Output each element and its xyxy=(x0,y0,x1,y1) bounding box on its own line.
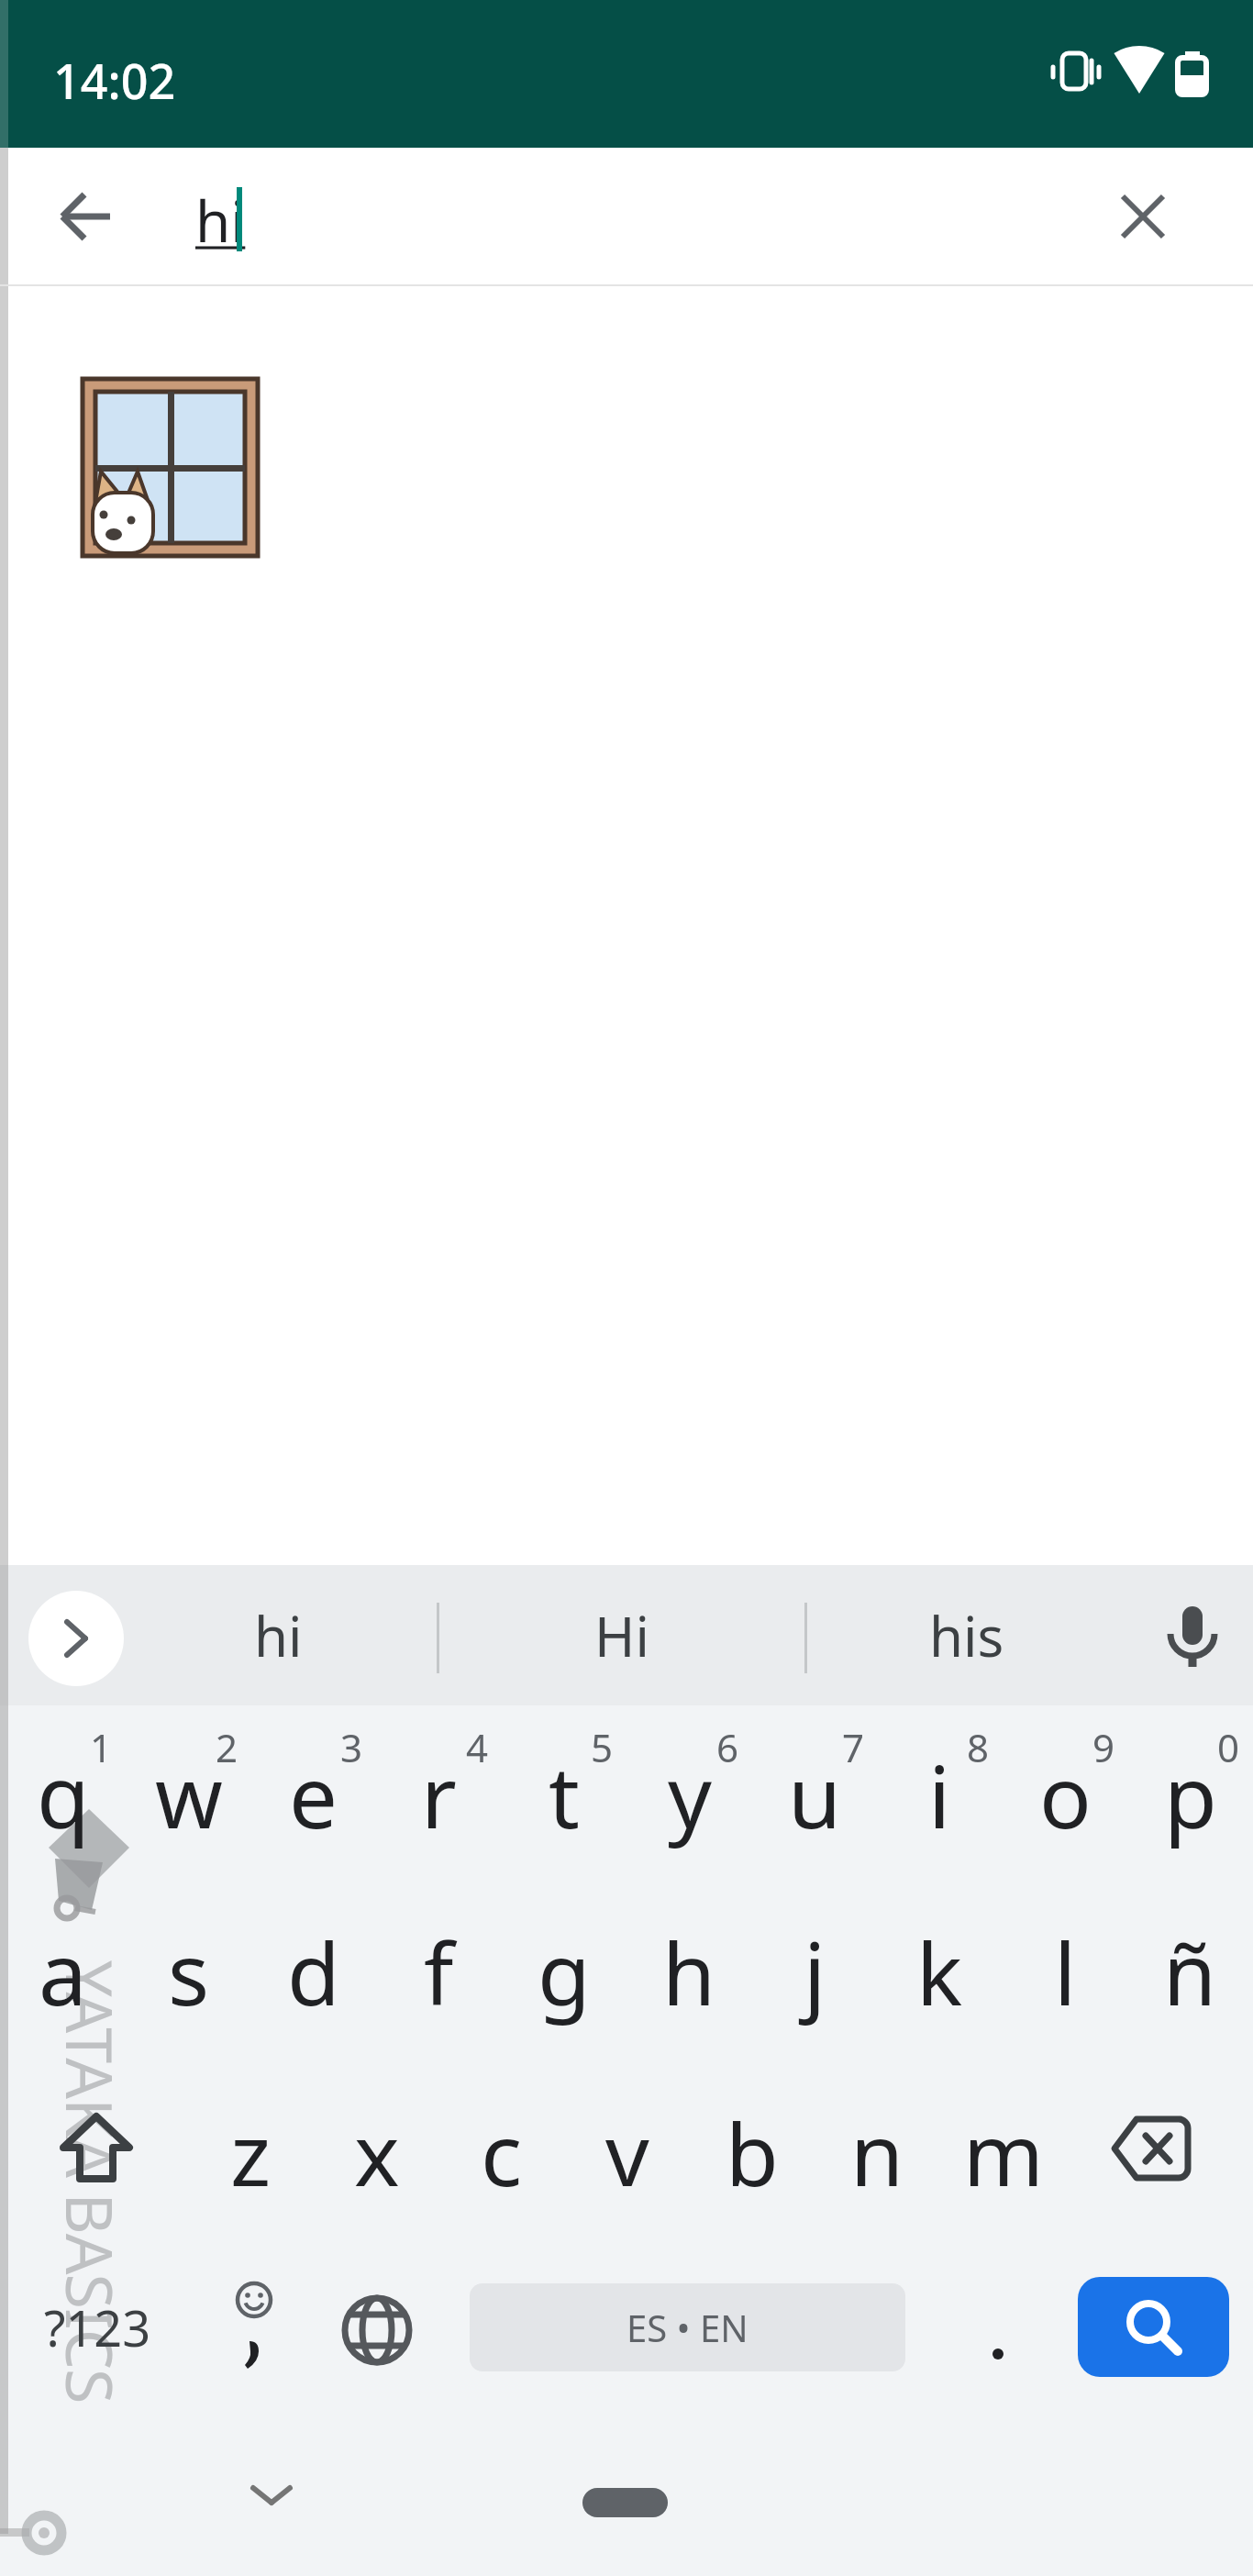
staticText: v xyxy=(605,2094,649,2212)
button[interactable]: x xyxy=(314,2064,439,2241)
staticText: 3 xyxy=(340,1721,363,1773)
staticText: m xyxy=(963,2094,1044,2212)
staticText: 14:02 xyxy=(53,48,176,113)
staticText: r xyxy=(421,1737,457,1854)
staticText: o xyxy=(1039,1737,1092,1854)
staticText: Hi xyxy=(594,1598,649,1673)
button[interactable]: e xyxy=(250,1706,376,1883)
staticText: e xyxy=(289,1737,338,1854)
button[interactable] xyxy=(1137,1583,1247,1693)
button[interactable] xyxy=(28,2082,165,2220)
staticText: YATAKA BASICS xyxy=(48,1960,135,2404)
button[interactable]: q xyxy=(0,1706,126,1883)
button[interactable]: s xyxy=(126,1883,251,2060)
staticText: i xyxy=(928,1737,951,1854)
button[interactable]: Hi xyxy=(505,1565,739,1705)
staticText: d xyxy=(287,1914,340,2031)
staticText: u xyxy=(788,1737,842,1854)
button[interactable]: o xyxy=(1003,1706,1128,1883)
staticText: w xyxy=(155,1737,223,1854)
staticText: 4 xyxy=(466,1721,489,1773)
staticText: y xyxy=(668,1737,712,1854)
button[interactable] xyxy=(1082,2087,1220,2225)
staticText: ?123 xyxy=(44,2293,151,2361)
button[interactable]: w xyxy=(126,1706,251,1883)
staticText: f xyxy=(424,1914,454,2031)
staticText: h xyxy=(662,1914,716,2031)
staticText: 2 xyxy=(216,1721,238,1773)
staticText: x xyxy=(354,2094,400,2212)
staticText: c xyxy=(481,2094,523,2212)
staticText: hi xyxy=(195,182,246,259)
button[interactable]: t xyxy=(501,1706,626,1883)
button[interactable] xyxy=(28,158,145,275)
staticText: 5 xyxy=(591,1721,614,1773)
staticText: 7 xyxy=(842,1721,865,1773)
staticText: b xyxy=(726,2094,779,2212)
button[interactable]: hi xyxy=(161,1565,395,1705)
staticText: n xyxy=(850,2094,904,2212)
staticText: 9 xyxy=(1092,1721,1115,1773)
staticText: z xyxy=(230,2094,272,2212)
button[interactable]: v xyxy=(564,2064,690,2241)
button[interactable]: u xyxy=(752,1706,878,1883)
button[interactable]: k xyxy=(877,1883,1003,2060)
staticText: t xyxy=(549,1737,580,1854)
staticText: 6 xyxy=(716,1721,739,1773)
staticText: 1 xyxy=(90,1721,113,1773)
button[interactable]: h xyxy=(626,1883,752,2060)
button[interactable]: z xyxy=(188,2064,314,2241)
button[interactable] xyxy=(582,2488,668,2517)
staticText: j xyxy=(804,1914,826,2031)
staticText: s xyxy=(168,1914,210,2031)
staticText: ES • EN xyxy=(626,2303,748,2352)
button[interactable]: r xyxy=(376,1706,502,1883)
button[interactable] xyxy=(1078,2277,1229,2377)
button[interactable]: m xyxy=(940,2064,1066,2241)
button[interactable] xyxy=(317,2266,437,2394)
staticText: his xyxy=(929,1598,1004,1673)
staticText: q xyxy=(37,1737,90,1854)
staticText: a xyxy=(39,1914,87,2031)
button[interactable] xyxy=(194,2266,314,2394)
button[interactable]: i xyxy=(877,1706,1003,1883)
staticText: p xyxy=(1164,1737,1217,1854)
button[interactable] xyxy=(1084,158,1202,275)
button[interactable]: g xyxy=(501,1883,626,2060)
button[interactable]: a xyxy=(0,1883,126,2060)
button[interactable] xyxy=(81,377,260,558)
button[interactable]: ñ xyxy=(1127,1883,1253,2060)
button[interactable]: b xyxy=(689,2064,815,2241)
button[interactable]: y xyxy=(626,1706,752,1883)
button[interactable]: p xyxy=(1127,1706,1253,1883)
staticText: k xyxy=(916,1914,963,2031)
button[interactable]: d xyxy=(250,1883,376,2060)
button[interactable]: n xyxy=(815,2064,940,2241)
button[interactable]: ES • EN xyxy=(470,2283,905,2371)
staticText: g xyxy=(538,1914,591,2031)
staticText: l xyxy=(1054,1914,1077,2031)
button[interactable]: f xyxy=(376,1883,502,2060)
button[interactable]: his xyxy=(849,1565,1084,1705)
button[interactable]: ?123 xyxy=(33,2282,161,2373)
staticText: ñ xyxy=(1163,1914,1217,2031)
staticText: 8 xyxy=(967,1721,990,1773)
button[interactable] xyxy=(226,2468,317,2541)
staticText: 0 xyxy=(1217,1721,1240,1773)
button[interactable]: j xyxy=(752,1883,878,2060)
button[interactable]: l xyxy=(1003,1883,1128,2060)
staticText: hi xyxy=(254,1598,303,1673)
button[interactable]: c xyxy=(438,2064,564,2241)
button[interactable] xyxy=(28,1591,124,1686)
